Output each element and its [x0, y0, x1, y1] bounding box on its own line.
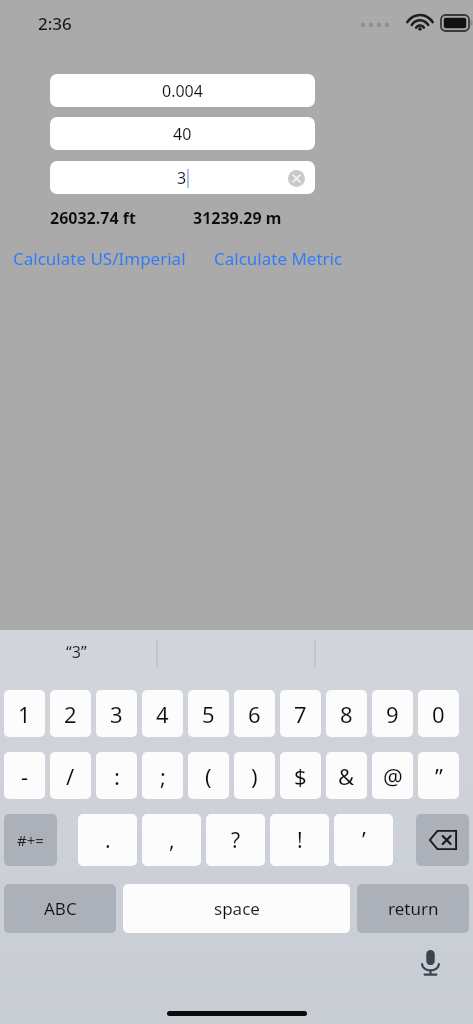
staticText: 3: [110, 699, 123, 729]
button[interactable]: $: [280, 752, 321, 799]
button[interactable]: return: [357, 884, 469, 933]
button[interactable]: .: [78, 814, 137, 866]
button[interactable]: 6: [234, 690, 275, 737]
button[interactable]: ): [234, 752, 275, 799]
staticText: 7: [294, 699, 307, 729]
button[interactable]: ?: [206, 814, 265, 866]
staticText: ’: [362, 826, 366, 855]
button[interactable]: 3: [96, 690, 137, 737]
staticText: 0: [432, 699, 445, 729]
button[interactable]: 4: [142, 690, 183, 737]
button[interactable]: :: [96, 752, 137, 799]
button[interactable]: /: [50, 752, 91, 799]
staticText: 2:36: [38, 12, 72, 35]
staticText: ?: [231, 826, 241, 855]
staticText: ;: [160, 761, 166, 791]
button[interactable]: ABC: [4, 884, 116, 933]
staticText: ): [251, 761, 258, 791]
button[interactable]: ’: [334, 814, 393, 866]
staticText: 9: [386, 699, 399, 729]
button[interactable]: 8: [326, 690, 367, 737]
button[interactable]: 7: [280, 690, 321, 737]
button[interactable]: @: [372, 752, 413, 799]
staticText: .: [105, 826, 111, 855]
staticText: #+=: [17, 830, 44, 850]
staticText: /: [66, 761, 75, 791]
staticText: 2: [64, 699, 77, 729]
staticText: 26032.74 ft: [50, 207, 136, 229]
staticText: 8: [340, 699, 353, 729]
staticText: 31239.29 m: [193, 207, 282, 229]
button[interactable]: ,: [142, 814, 201, 866]
button[interactable]: Calculate Metric: [212, 244, 345, 273]
staticText: 0.004: [162, 80, 203, 102]
button[interactable]: 9: [372, 690, 413, 737]
button[interactable]: Clear text: [285, 167, 307, 189]
button[interactable]: 1: [4, 690, 45, 737]
button[interactable]: Dictation: [411, 944, 449, 982]
button[interactable]: ;: [142, 752, 183, 799]
staticText: !: [297, 826, 303, 855]
staticText: ”: [435, 761, 443, 791]
button[interactable]: space: [123, 884, 350, 933]
staticText: Calculate Metric: [214, 247, 343, 270]
staticText: 4: [156, 699, 169, 729]
staticText: (: [205, 761, 212, 791]
button[interactable]: 0: [418, 690, 459, 737]
staticText: :: [114, 761, 120, 791]
button[interactable]: (: [188, 752, 229, 799]
staticText: “3”: [66, 641, 87, 663]
button[interactable]: Backspace: [416, 814, 469, 866]
staticText: &: [338, 761, 355, 791]
staticText: 1: [18, 699, 31, 729]
staticText: return: [388, 897, 439, 920]
staticText: -: [21, 761, 29, 791]
staticText: 6: [248, 699, 261, 729]
button[interactable]: 3: [50, 161, 315, 194]
button[interactable]: ”: [418, 752, 459, 799]
button[interactable]: 5: [188, 690, 229, 737]
staticText: space: [214, 897, 260, 920]
staticText: 5: [202, 699, 215, 729]
button[interactable]: 0.004: [50, 74, 315, 107]
staticText: 40: [173, 123, 192, 145]
staticText: @: [383, 761, 403, 791]
staticText: $: [294, 761, 307, 791]
button[interactable]: Calculate US/Imperial: [11, 244, 188, 273]
button[interactable]: -: [4, 752, 45, 799]
button[interactable]: !: [270, 814, 329, 866]
button[interactable]: 40: [50, 117, 315, 150]
button[interactable]: 2: [50, 690, 91, 737]
button[interactable]: &: [326, 752, 367, 799]
staticText: ,: [169, 826, 175, 855]
staticText: Calculate US/Imperial: [13, 247, 186, 270]
staticText: ABC: [44, 897, 77, 920]
button[interactable]: #+=: [4, 814, 57, 866]
staticText: 3: [177, 167, 187, 189]
